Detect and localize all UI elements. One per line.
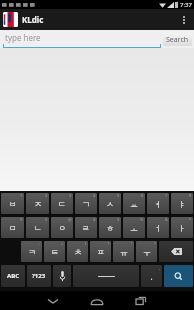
staticText: 7:37 [180, 1, 192, 9]
staticText: type here [5, 32, 41, 43]
staticText: * [189, 217, 192, 222]
staticText: @ [68, 217, 72, 222]
button[interactable]: 6 [123, 193, 145, 214]
staticText: ㄴ [34, 223, 42, 233]
button[interactable]: Home [75, 291, 119, 310]
button[interactable]: Delete [159, 241, 193, 262]
button[interactable]: @ [51, 217, 73, 238]
button[interactable]: 2 [26, 193, 49, 214]
staticText: ㅓ [154, 223, 162, 233]
staticText: 1 [20, 193, 23, 198]
staticText: ㅕ [154, 199, 162, 209]
staticText: ㅂ [9, 199, 17, 209]
staticText: , [159, 265, 161, 270]
button[interactable]: , [141, 265, 162, 287]
staticText: ) [108, 241, 110, 246]
staticText: ㅜ [143, 247, 151, 257]
staticText: 6 [141, 193, 144, 198]
button[interactable]: # [75, 217, 97, 238]
staticText: 7 [165, 193, 168, 198]
staticText: ㅊ [74, 247, 82, 257]
button[interactable]: 5 [99, 193, 121, 214]
staticText: $ [117, 217, 120, 222]
button[interactable]: 7 [147, 193, 169, 214]
staticText: ㄷ [58, 199, 66, 209]
staticText: # [93, 217, 96, 222]
staticText: 3 [69, 193, 72, 198]
staticText: . [150, 271, 153, 282]
staticText: ㄱ [82, 199, 90, 209]
staticText: ( [85, 241, 87, 246]
button[interactable]: * [171, 217, 193, 238]
staticText: ?123 [32, 272, 46, 280]
staticText: 2 [45, 193, 48, 198]
button[interactable]: Space [73, 265, 139, 287]
button[interactable]: App icon [3, 12, 18, 27]
button[interactable]: Recent apps [119, 291, 163, 310]
button[interactable]: Voice input [53, 265, 71, 287]
button[interactable]: Search [163, 33, 192, 46]
button[interactable]: ( [67, 241, 88, 262]
button[interactable]: 1 [1, 193, 24, 214]
staticText: ABC [7, 272, 19, 280]
button[interactable]: More options [177, 9, 191, 30]
button[interactable]: 0 [26, 217, 49, 238]
button[interactable]: & [147, 217, 169, 238]
button[interactable]: 9 [1, 217, 24, 238]
staticText: ㅗ [130, 223, 138, 233]
staticText: ㅍ [97, 247, 105, 257]
staticText: ? [154, 241, 156, 246]
staticText: ㅏ [178, 223, 186, 233]
button[interactable]: Hide keyboard [31, 291, 75, 310]
button[interactable]: type here [3, 30, 161, 48]
staticText: 0 [45, 217, 48, 222]
staticText: + [61, 241, 64, 246]
button[interactable]: + [44, 241, 65, 262]
button[interactable]: ? [136, 241, 157, 262]
staticText: ㅅ [106, 199, 114, 209]
staticText: & [165, 217, 168, 222]
staticText: ㅌ [51, 247, 59, 257]
button[interactable]: $ [99, 217, 121, 238]
staticText: ㅋ [28, 247, 36, 257]
button[interactable]: ) [90, 241, 111, 262]
staticText: 8 [189, 193, 192, 198]
button[interactable]: ! [113, 241, 134, 262]
button[interactable]: - [21, 241, 42, 262]
staticText: ㅛ [130, 199, 138, 209]
staticText: ! [131, 241, 133, 246]
staticText: 5 [117, 193, 120, 198]
staticText: % [140, 217, 144, 222]
staticText: ㅇ [58, 223, 66, 233]
staticText: ㅎ [106, 223, 114, 233]
staticText: Search [166, 35, 189, 45]
staticText: KLdic [22, 14, 44, 25]
button[interactable]: Search [164, 265, 193, 287]
staticText: ㄹ [82, 223, 90, 233]
button[interactable]: % [123, 217, 145, 238]
staticText: ㅁ [9, 223, 17, 233]
staticText: ㅠ [120, 247, 128, 257]
button[interactable]: Switch to alphabet [1, 265, 25, 287]
staticText: 4 [93, 193, 96, 198]
staticText: 9 [20, 217, 23, 222]
button[interactable]: 4 [75, 193, 97, 214]
staticText: - [39, 241, 41, 246]
button[interactable]: Symbols [27, 265, 51, 287]
staticText: ㅈ [34, 199, 42, 209]
button[interactable]: 8 [171, 193, 193, 214]
staticText: ㅑ [178, 199, 186, 209]
button[interactable]: 3 [51, 193, 73, 214]
